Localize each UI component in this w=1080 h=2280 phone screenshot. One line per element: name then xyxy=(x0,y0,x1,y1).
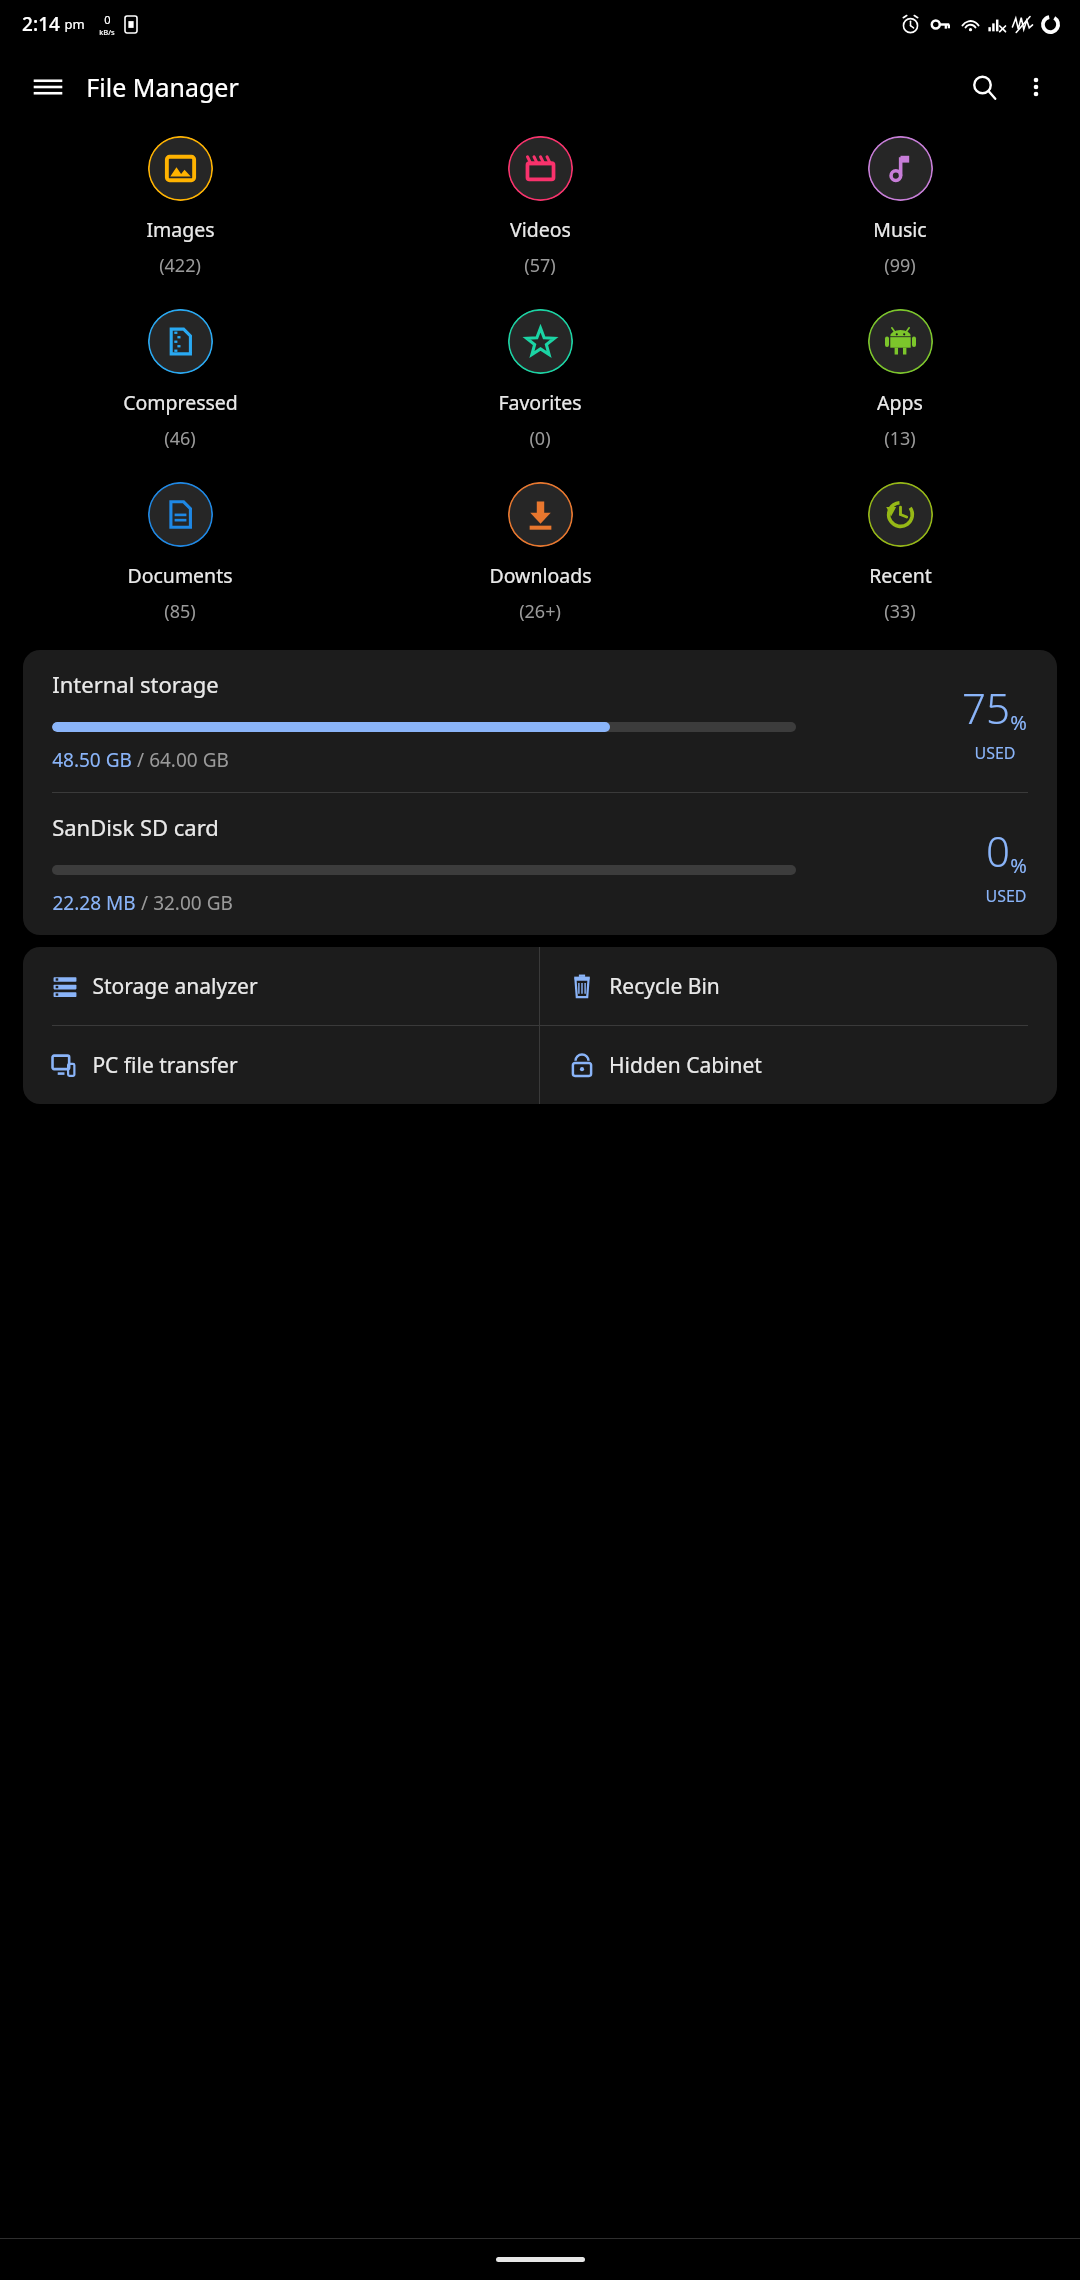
staticText: / 64.00 GB xyxy=(132,747,229,773)
button[interactable]: Apps xyxy=(720,305,1080,455)
button[interactable]: Search xyxy=(958,61,1010,113)
staticText: (46) xyxy=(164,426,196,451)
staticText: (13) xyxy=(884,426,916,451)
staticText: / 32.00 GB xyxy=(136,890,233,916)
button[interactable]: Recent xyxy=(720,478,1080,628)
staticText: Storage analyzer xyxy=(92,972,258,1001)
staticText: (422) xyxy=(159,253,201,278)
button[interactable]: Storage analyzer xyxy=(23,947,539,1025)
staticText: (0) xyxy=(529,426,551,451)
staticText: Documents xyxy=(127,562,233,589)
staticText: Compressed xyxy=(123,389,238,416)
staticText: Recent xyxy=(869,562,932,589)
staticText: Hidden Cabinet xyxy=(609,1051,762,1080)
button[interactable]: Menu xyxy=(24,63,72,111)
button[interactable]: Internal storage xyxy=(23,650,1057,792)
button[interactable]: PC file transfer xyxy=(23,1026,539,1104)
staticText: 2:14 xyxy=(22,11,60,37)
staticText: % xyxy=(1010,709,1027,736)
button[interactable]: Documents xyxy=(0,478,360,628)
button[interactable]: Favorites xyxy=(360,305,720,455)
staticText: 0 xyxy=(104,12,111,27)
staticText: 75 xyxy=(962,679,1010,736)
button[interactable]: Videos xyxy=(360,132,720,282)
staticText: 22.28 MB xyxy=(52,890,136,916)
staticText: Favorites xyxy=(498,389,582,416)
staticText: Images xyxy=(146,216,215,243)
staticText: Internal storage xyxy=(52,669,219,699)
button[interactable]: SanDisk SD card xyxy=(23,793,1057,935)
button[interactable]: Compressed xyxy=(0,305,360,455)
staticText: 0 xyxy=(986,822,1010,879)
button[interactable]: Downloads xyxy=(360,478,720,628)
button[interactable]: Music xyxy=(720,132,1080,282)
button[interactable]: Recycle Bin xyxy=(540,947,1057,1025)
staticText: Apps xyxy=(877,389,923,416)
staticText: PC file transfer xyxy=(92,1051,238,1080)
staticText: Downloads xyxy=(489,562,592,589)
staticText: USED xyxy=(974,742,1016,764)
staticText: (85) xyxy=(164,599,196,624)
staticText: pm xyxy=(64,15,85,33)
staticText: USED xyxy=(985,885,1027,907)
staticText: (99) xyxy=(884,253,916,278)
staticText: (33) xyxy=(884,599,916,624)
button[interactable]: Hidden Cabinet xyxy=(540,1026,1057,1104)
staticText: SanDisk SD card xyxy=(52,812,219,842)
staticText: Music xyxy=(873,216,927,243)
staticText: Recycle Bin xyxy=(609,972,720,1001)
button[interactable]: More options xyxy=(1010,61,1062,113)
staticText: (26+) xyxy=(519,599,561,624)
staticText: Videos xyxy=(510,216,571,243)
staticText: kB/s xyxy=(99,27,115,37)
staticText: 48.50 GB xyxy=(52,747,132,773)
staticText: % xyxy=(1010,852,1027,879)
button[interactable]: Images xyxy=(0,132,360,282)
staticText: (57) xyxy=(524,253,556,278)
staticText: File Manager xyxy=(86,70,239,104)
